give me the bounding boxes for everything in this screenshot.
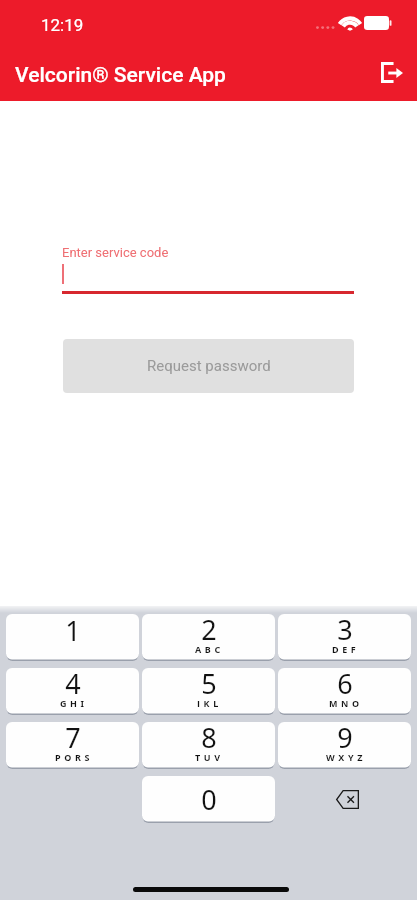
button[interactable]: 8 bbox=[142, 722, 275, 769]
button[interactable]: Log out bbox=[364, 48, 417, 101]
button[interactable]: 5 bbox=[142, 668, 275, 715]
staticText: 1 bbox=[65, 612, 81, 649]
staticText: 12:19 bbox=[41, 15, 84, 35]
staticText: JKL bbox=[197, 697, 222, 707]
button[interactable]: 0 bbox=[142, 776, 275, 823]
staticText: 4 bbox=[65, 665, 81, 702]
staticText: ABC bbox=[195, 643, 224, 653]
button[interactable]: 1 bbox=[6, 614, 139, 661]
staticText: 5 bbox=[201, 665, 217, 702]
button[interactable]: Request password bbox=[63, 339, 354, 393]
button[interactable]: 3 bbox=[278, 614, 411, 661]
staticText: 6 bbox=[337, 665, 353, 702]
button[interactable]: 4 bbox=[6, 668, 139, 715]
staticText: 8 bbox=[201, 719, 217, 756]
staticText: Velcorin® Service App bbox=[15, 63, 226, 88]
button[interactable]: 7 bbox=[6, 722, 139, 769]
staticText: WXYZ bbox=[326, 751, 366, 761]
staticText: DEF bbox=[332, 643, 360, 653]
staticText: 0 bbox=[201, 781, 217, 818]
staticText: GHI bbox=[60, 697, 88, 707]
button[interactable]: Backspace bbox=[278, 776, 411, 823]
staticText: 2 bbox=[201, 611, 217, 648]
button[interactable]: 2 bbox=[142, 614, 275, 661]
staticText: TUV bbox=[195, 751, 224, 761]
staticText: 9 bbox=[337, 719, 353, 756]
staticText: Request password bbox=[147, 357, 271, 375]
button[interactable]: 6 bbox=[278, 668, 411, 715]
staticText: PQRS bbox=[55, 751, 93, 761]
button[interactable]: 9 bbox=[278, 722, 411, 769]
staticText: 7 bbox=[65, 719, 81, 756]
staticText: MNO bbox=[329, 697, 363, 707]
staticText: Enter service code bbox=[62, 245, 169, 260]
staticText: 3 bbox=[337, 611, 353, 648]
